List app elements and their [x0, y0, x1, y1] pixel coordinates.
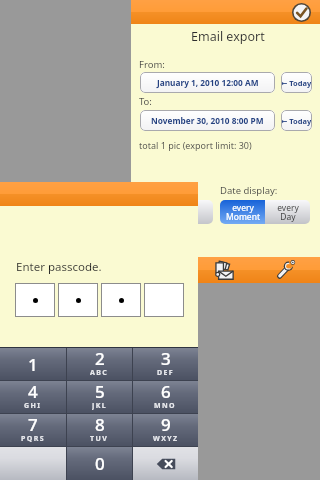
staticText: 1 — [28, 353, 38, 376]
staticText: every Day — [277, 202, 299, 223]
button[interactable]: 2 — [67, 348, 132, 380]
staticText: MNO — [154, 401, 177, 410]
staticText: PQRS — [21, 434, 45, 443]
button[interactable]: January 1, 2010 12:00 AM — [140, 72, 275, 93]
button[interactable]: 0 — [67, 447, 132, 480]
button[interactable] — [101, 283, 141, 317]
button[interactable]: Settings — [276, 259, 296, 279]
staticText: ABC — [90, 368, 109, 377]
staticText: ← Today — [281, 116, 312, 126]
button[interactable]: every Day — [265, 200, 310, 224]
button[interactable]: ← Today — [281, 110, 312, 131]
staticText: 0 — [95, 452, 105, 475]
staticText: DEF — [157, 368, 175, 377]
button[interactable]: 3 — [133, 348, 198, 380]
staticText: Enter passcode. — [16, 259, 102, 275]
button[interactable]: November 30, 2010 8:00 PM — [140, 110, 275, 131]
staticText: ← Today — [281, 78, 312, 88]
button[interactable]: Done — [292, 3, 311, 22]
staticText: 7 — [28, 413, 38, 436]
button[interactable]: 1 — [0, 348, 66, 380]
button[interactable] — [0, 447, 66, 480]
staticText: 2 — [95, 347, 105, 370]
staticText: JKL — [92, 401, 108, 410]
staticText: November 30, 2010 8:00 PM — [151, 115, 264, 126]
button[interactable]: Delete — [133, 447, 198, 480]
staticText: TUV — [90, 434, 109, 443]
staticText: GHI — [24, 401, 42, 410]
staticText: 8 — [95, 413, 105, 436]
staticText: 3 — [161, 347, 171, 370]
button[interactable]: 9 — [133, 414, 198, 446]
button[interactable]: ← Today — [281, 72, 312, 93]
staticText: From: — [139, 58, 165, 71]
button[interactable]: 5 — [67, 381, 132, 413]
staticText: January 1, 2010 12:00 AM — [157, 77, 259, 88]
button[interactable]: Email export — [212, 259, 234, 281]
staticText: 5 — [95, 380, 105, 403]
staticText: To: — [139, 95, 152, 108]
button[interactable]: 6 — [133, 381, 198, 413]
staticText: 6 — [161, 380, 171, 403]
staticText: WXYZ — [153, 434, 179, 443]
staticText: 4 — [28, 380, 38, 403]
button[interactable] — [144, 283, 184, 317]
button[interactable]: 4 — [0, 381, 66, 413]
button[interactable]: 8 — [67, 414, 132, 446]
staticText: Email export — [191, 28, 265, 45]
button[interactable] — [198, 200, 213, 224]
staticText: 9 — [161, 413, 171, 436]
button[interactable] — [15, 283, 55, 317]
button[interactable] — [58, 283, 98, 317]
staticText: total 1 pic (export limit: 30) — [139, 139, 252, 151]
button[interactable]: 7 — [0, 414, 66, 446]
button[interactable]: every Moment — [220, 200, 265, 224]
staticText: every Moment — [226, 202, 260, 223]
staticText: Date display: — [220, 184, 278, 197]
